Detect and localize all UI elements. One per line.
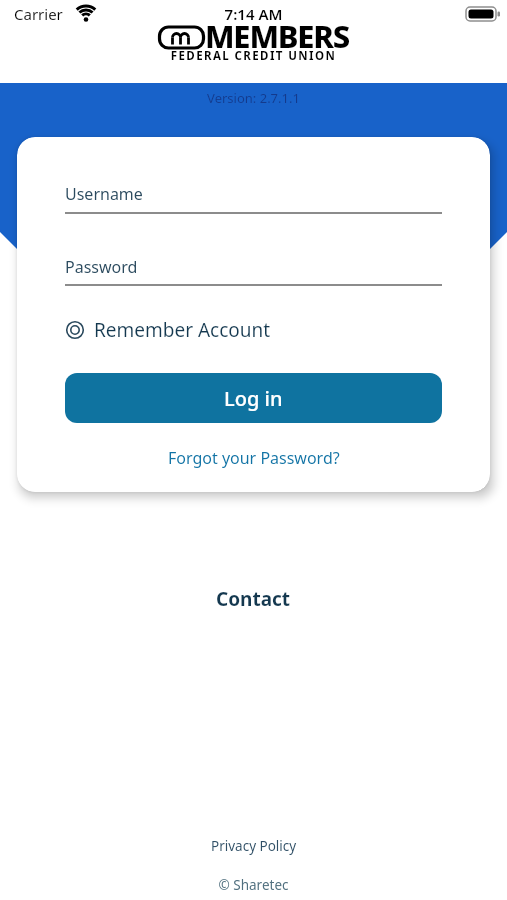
button[interactable]: Privacy Policy — [0, 837, 507, 855]
staticText: Contact — [216, 586, 291, 612]
staticText: Remember Account — [94, 317, 271, 343]
staticText: MEMBERS — [205, 15, 349, 57]
button[interactable]: Remember Account — [65, 317, 271, 343]
button[interactable]: Forgot your Password? — [17, 447, 490, 469]
staticText: Privacy Policy — [211, 837, 297, 855]
staticText: FEDERAL CREDIT UNION — [0, 48, 507, 64]
staticText: Version: 2.7.1.1 — [0, 89, 507, 107]
button[interactable]: Contact — [0, 586, 507, 612]
staticText: Log in — [224, 385, 283, 412]
staticText: Carrier — [14, 4, 63, 24]
button[interactable]: Log in — [65, 373, 442, 423]
staticText: Username — [65, 183, 143, 205]
staticText: Forgot your Password? — [168, 447, 340, 469]
staticText: Password — [65, 256, 138, 278]
staticText: 7:14 AM — [0, 4, 507, 24]
staticText: © Sharetec — [0, 876, 507, 894]
